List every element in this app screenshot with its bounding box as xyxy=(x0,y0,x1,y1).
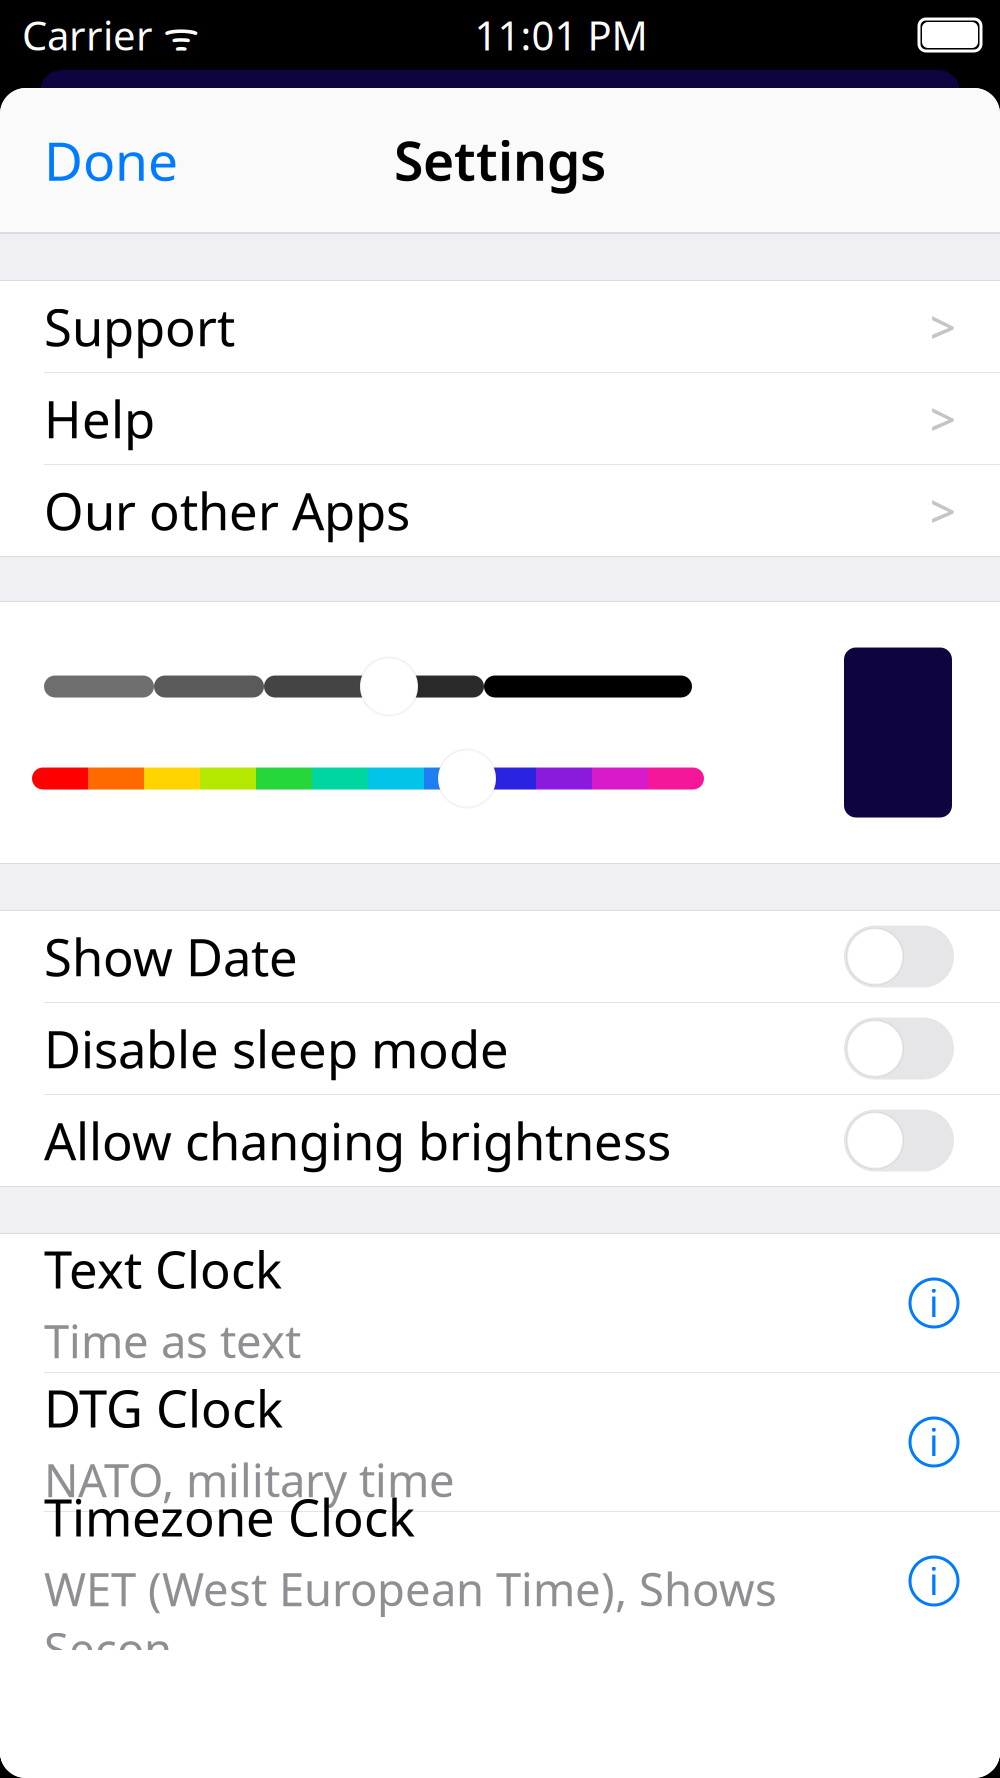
staticText: > xyxy=(930,480,956,541)
staticText: Allow changing brightness xyxy=(44,1107,671,1174)
staticText: DTG Clock xyxy=(44,1374,283,1442)
button[interactable]: More info xyxy=(910,1557,958,1605)
staticText: Show Date xyxy=(44,923,298,990)
button[interactable]: Toggle xyxy=(844,1109,954,1171)
staticText: Timezone Clock xyxy=(44,1483,415,1550)
staticText: > xyxy=(930,388,956,449)
button[interactable]: Support xyxy=(0,281,1000,372)
staticText: WET (West European Time), Shows Secon... xyxy=(44,1558,777,1679)
button[interactable]: Our other Apps xyxy=(0,465,1000,556)
button[interactable]: Done xyxy=(0,107,222,213)
staticText: ᯤ xyxy=(153,8,200,61)
staticText: i xyxy=(929,1417,939,1467)
staticText: Support xyxy=(44,293,235,360)
staticText: > xyxy=(930,296,956,357)
staticText: Done xyxy=(44,125,178,195)
button[interactable]: Show Date xyxy=(0,911,1000,1002)
button[interactable]: More info xyxy=(910,1418,958,1466)
staticText: Text Clock xyxy=(44,1235,282,1303)
staticText: i xyxy=(929,1278,939,1328)
button[interactable]: DTG Clock xyxy=(0,1373,1000,1511)
staticText: i xyxy=(929,1556,939,1606)
button[interactable]: Help xyxy=(0,373,1000,464)
button[interactable]: More info xyxy=(910,1279,958,1327)
staticText: Carrier xyxy=(22,8,153,61)
staticText: Time as text xyxy=(44,1310,301,1371)
button[interactable]: Toggle xyxy=(844,925,954,987)
button[interactable]: Disable sleep mode xyxy=(0,1003,1000,1094)
button[interactable]: Timezone Clock xyxy=(0,1512,1000,1650)
staticText: 11:01 PM xyxy=(474,8,647,61)
button[interactable]: Allow changing brightness xyxy=(0,1095,1000,1186)
staticText: NATO, military time xyxy=(44,1449,455,1510)
staticText: Disable sleep mode xyxy=(44,1015,509,1082)
button[interactable]: Toggle xyxy=(844,1017,954,1079)
staticText: Our other Apps xyxy=(44,477,410,544)
staticText: Settings xyxy=(394,125,606,195)
staticText: Help xyxy=(44,385,155,452)
button[interactable]: Text Clock xyxy=(0,1234,1000,1372)
